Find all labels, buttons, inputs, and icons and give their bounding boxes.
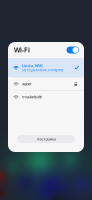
staticText: Linda_Wifi	[22, 63, 43, 68]
staticText: Настройки	[36, 136, 55, 142]
staticText: Без подключения к интернету	[22, 68, 63, 72]
button[interactable]: mouladside	[8, 90, 84, 103]
staticText: agnat	[22, 81, 31, 86]
button[interactable]: agnat	[8, 77, 84, 90]
staticText: mouladside	[22, 94, 42, 99]
button[interactable]: Настройки	[17, 135, 75, 143]
button[interactable]: Linda_Wifi	[8, 58, 84, 77]
staticText: Wi-Fi	[14, 46, 30, 54]
button[interactable]: Wi-Fi on	[66, 46, 79, 53]
